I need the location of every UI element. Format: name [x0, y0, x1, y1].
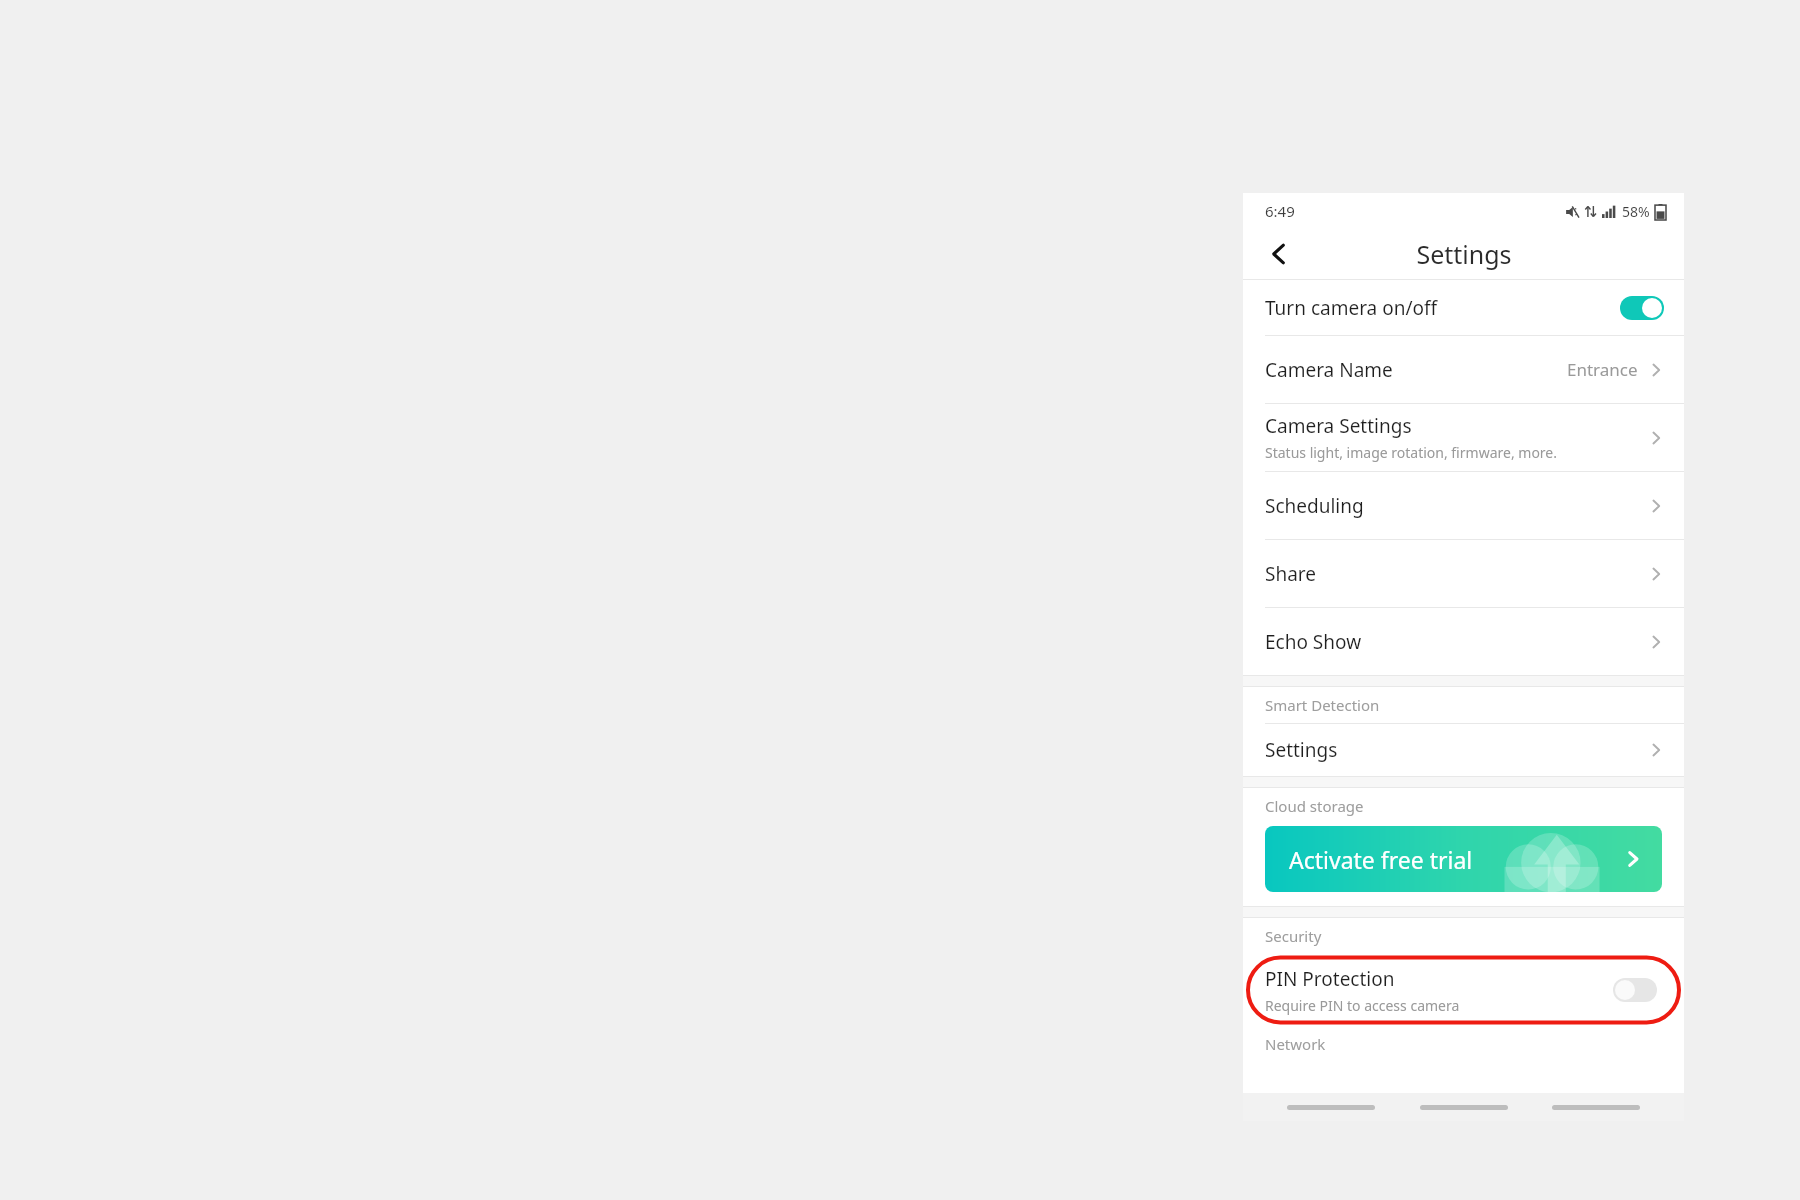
button[interactable]: Echo Show	[1243, 608, 1684, 675]
button[interactable]: Activate free trial	[1265, 826, 1662, 892]
button[interactable]	[1552, 1105, 1640, 1110]
staticText: Status light, image rotation, firmware, …	[1265, 443, 1557, 462]
staticText: Settings	[1416, 237, 1512, 271]
staticText: Settings	[1265, 737, 1338, 763]
staticText: Scheduling	[1265, 493, 1364, 519]
staticText: PIN Protection	[1265, 966, 1395, 992]
staticText: Network	[1265, 1034, 1326, 1054]
staticText: Turn camera on/off	[1265, 295, 1438, 321]
button[interactable]: Settings	[1243, 724, 1684, 776]
button[interactable]: Share	[1243, 540, 1684, 607]
button[interactable]: Toggle	[1613, 978, 1657, 1002]
staticText: Security	[1265, 926, 1322, 946]
staticText: Camera Name	[1265, 357, 1393, 383]
button[interactable]	[1287, 1105, 1375, 1110]
staticText: Entrance	[1567, 358, 1638, 381]
button[interactable]	[1420, 1105, 1508, 1110]
button[interactable]: Toggle	[1620, 296, 1664, 320]
button[interactable]: Scheduling	[1243, 472, 1684, 539]
staticText: 58%	[1622, 202, 1650, 221]
button[interactable]: Camera Settings	[1243, 404, 1684, 471]
staticText: Echo Show	[1265, 629, 1362, 655]
staticText: Cloud storage	[1265, 796, 1364, 816]
staticText: Smart Detection	[1265, 695, 1380, 715]
button[interactable]: Back	[1257, 232, 1301, 276]
staticText: Activate free trial	[1289, 844, 1473, 875]
staticText: Require PIN to access camera	[1265, 996, 1460, 1015]
staticText: 6:49	[1265, 201, 1295, 221]
staticText: Share	[1265, 561, 1317, 587]
button[interactable]: PIN Protection	[1248, 954, 1679, 1026]
button[interactable]: Camera Name	[1243, 336, 1684, 403]
staticText: Camera Settings	[1265, 413, 1412, 439]
button[interactable]: Turn camera on/off	[1243, 280, 1684, 335]
